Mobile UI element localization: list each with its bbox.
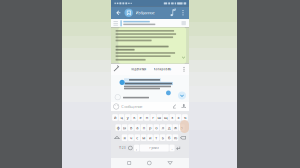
button[interactable]: Home bbox=[147, 161, 151, 165]
button[interactable]: л bbox=[160, 124, 165, 131]
button[interactable]: ю bbox=[172, 134, 178, 141]
button[interactable]: Копировать bbox=[153, 63, 170, 75]
button[interactable]: г bbox=[150, 114, 156, 121]
button[interactable]: Record voice message bbox=[177, 103, 189, 110]
button[interactable]: ь bbox=[160, 134, 165, 141]
button[interactable]: ъ bbox=[182, 114, 188, 121]
button[interactable]: к bbox=[131, 114, 137, 121]
button[interactable]: ш bbox=[157, 114, 162, 121]
staticText: ч bbox=[130, 135, 132, 140]
staticText: ц bbox=[120, 115, 122, 120]
button[interactable]: . bbox=[169, 145, 175, 151]
staticText: е bbox=[139, 115, 141, 120]
button[interactable]: э bbox=[179, 124, 185, 131]
staticText: , bbox=[136, 145, 137, 151]
button[interactable]: Attach file bbox=[172, 103, 177, 110]
button[interactable]: Recent apps bbox=[128, 161, 131, 165]
button[interactable]: ?123 bbox=[118, 145, 127, 151]
staticText: э bbox=[181, 125, 183, 130]
button[interactable]: More options bbox=[179, 6, 186, 19]
button[interactable]: Scroll to bottom bbox=[178, 91, 186, 99]
button[interactable]: щ bbox=[163, 114, 169, 121]
button[interactable]: р bbox=[147, 124, 153, 131]
staticText: к bbox=[133, 115, 135, 120]
button[interactable]: я bbox=[122, 134, 127, 141]
button[interactable]: и bbox=[147, 134, 153, 141]
staticText: я bbox=[124, 135, 126, 140]
staticText: ?123 bbox=[119, 146, 126, 150]
staticText: с bbox=[136, 135, 138, 140]
staticText: д bbox=[168, 125, 170, 130]
staticText: щ bbox=[164, 115, 168, 120]
staticText: ш bbox=[157, 115, 161, 120]
staticText: Русский bbox=[149, 146, 159, 150]
staticText: ъ bbox=[184, 115, 186, 120]
staticText: Копировать bbox=[153, 67, 170, 71]
staticText: й bbox=[114, 115, 116, 120]
button[interactable]: Emoji bbox=[111, 104, 119, 109]
staticText: ы bbox=[123, 125, 126, 130]
button[interactable]: Русский bbox=[140, 144, 169, 151]
button[interactable]: ф bbox=[115, 124, 121, 131]
button[interactable]: н bbox=[144, 114, 150, 121]
button[interactable]: д bbox=[166, 124, 172, 131]
button[interactable]: й bbox=[112, 114, 118, 121]
staticText: о bbox=[155, 125, 157, 130]
button[interactable]: з bbox=[169, 114, 175, 121]
staticText: ь bbox=[162, 135, 164, 140]
staticText: в bbox=[130, 125, 132, 130]
button[interactable]: , bbox=[134, 145, 139, 151]
staticText: Избранное bbox=[135, 10, 154, 15]
staticText: г bbox=[152, 115, 154, 120]
staticText: т bbox=[155, 135, 157, 140]
button[interactable]: а bbox=[134, 124, 140, 131]
staticText: н bbox=[146, 115, 148, 120]
button[interactable] bbox=[175, 145, 181, 151]
button[interactable]: в bbox=[128, 124, 134, 131]
staticText: и bbox=[149, 135, 151, 140]
staticText: ф bbox=[117, 125, 120, 130]
button[interactable]: е bbox=[138, 114, 143, 121]
button[interactable]: у bbox=[125, 114, 131, 121]
button[interactable]: Избранное bbox=[124, 6, 170, 19]
button[interactable]: ц bbox=[119, 114, 124, 121]
staticText: л bbox=[162, 125, 164, 130]
button[interactable]: ы bbox=[122, 124, 127, 131]
button[interactable]: More bbox=[181, 63, 187, 75]
button[interactable]: Edit bbox=[111, 63, 120, 75]
button[interactable] bbox=[127, 145, 133, 151]
staticText: у bbox=[127, 115, 129, 120]
staticText: з bbox=[171, 115, 173, 120]
button[interactable]: м bbox=[141, 134, 146, 141]
staticText: ж bbox=[174, 125, 177, 130]
button[interactable]: о bbox=[153, 124, 159, 131]
staticText: м bbox=[142, 135, 145, 140]
staticText: р bbox=[149, 125, 151, 130]
staticText: б bbox=[168, 135, 170, 140]
staticText: Поделиться bbox=[130, 67, 146, 71]
button[interactable]: ч bbox=[128, 134, 134, 141]
button[interactable]: Поделиться bbox=[130, 63, 146, 75]
staticText: Сообщение bbox=[121, 104, 142, 109]
button[interactable]: т bbox=[153, 134, 159, 141]
staticText: а bbox=[136, 125, 138, 130]
button[interactable]: Music bbox=[169, 6, 177, 19]
button[interactable]: с bbox=[134, 134, 140, 141]
button[interactable]: ж bbox=[172, 124, 178, 131]
staticText: ю bbox=[174, 135, 177, 140]
staticText: х bbox=[178, 115, 180, 120]
button[interactable]: б bbox=[166, 134, 172, 141]
button[interactable]: х bbox=[176, 114, 181, 121]
button[interactable] bbox=[111, 19, 189, 27]
button[interactable]: Back bbox=[168, 161, 172, 165]
button[interactable] bbox=[113, 134, 121, 141]
button[interactable] bbox=[179, 134, 187, 141]
button[interactable]: п bbox=[141, 124, 146, 131]
staticText: п bbox=[143, 125, 145, 130]
button[interactable]: Back bbox=[113, 6, 124, 19]
